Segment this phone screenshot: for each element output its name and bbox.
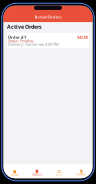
staticText: Profile [76,173,86,176]
staticText: Menu [55,173,63,176]
staticText: Home [11,173,19,176]
staticText: Status: Pending [8,38,33,43]
staticText: Delivery: Tomorrow 2:00 PM [8,41,59,47]
button[interactable]: Profile [70,164,92,178]
staticText: $42.00 [77,34,88,40]
button[interactable]: Menu [48,164,70,178]
staticText: Order #1 [8,34,26,40]
button[interactable]: Orders [26,164,48,178]
staticText: Active Orders [7,23,42,30]
button[interactable]: Order #1 [6,33,89,48]
staticText: Orders [32,173,41,176]
staticText: Active Orders [34,14,61,20]
button[interactable]: Home [3,164,26,178]
